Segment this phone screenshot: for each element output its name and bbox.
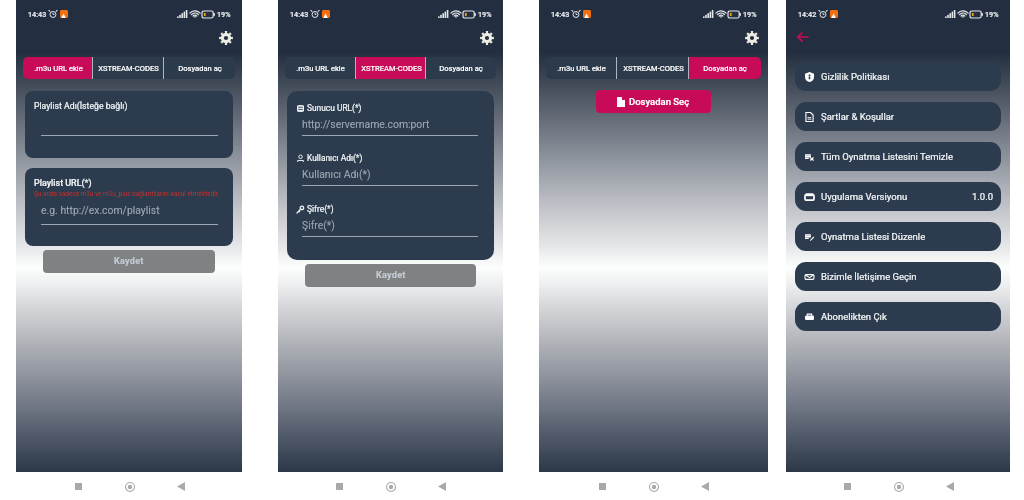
staticText: 19% — [217, 10, 231, 18]
staticText: Tüm Oynatma Listesini Temizle — [821, 151, 953, 162]
button[interactable]: XSTREAM-CODES — [93, 57, 164, 79]
staticText: Dosyadan aç — [178, 64, 222, 73]
button[interactable]: Back — [170, 476, 191, 497]
staticText: Dosyadan aç — [703, 64, 747, 73]
button[interactable]: Dosyadan aç — [164, 57, 235, 79]
staticText: 19% — [478, 10, 492, 18]
staticText: Playlist URL(*) — [34, 178, 92, 188]
staticText: 19% — [743, 10, 757, 18]
button[interactable]: Uygulama Versiyonu — [795, 182, 1001, 211]
staticText: Abonelikten Çık — [821, 311, 887, 322]
staticText: Uygulama Versiyonu — [821, 191, 908, 202]
button[interactable]: Dosyadan Seç — [596, 90, 711, 113]
button[interactable]: Recent apps — [68, 476, 89, 497]
staticText: XSTREAM-CODES — [98, 64, 159, 73]
staticText: Sunucu URL(*) — [307, 103, 362, 113]
button[interactable]: Dosyadan aç — [426, 57, 496, 79]
staticText: http://servername.com:port — [302, 118, 430, 130]
button[interactable]: Back — [431, 476, 452, 497]
button[interactable]: Tüm Oynatma Listesini Temizle — [795, 142, 1001, 171]
staticText: .m3u URL ekle — [296, 64, 345, 73]
button[interactable]: Recent apps — [329, 476, 350, 497]
button[interactable]: Playlist URL(*) — [25, 168, 233, 246]
staticText: Şifre(*) — [307, 204, 334, 214]
staticText: Dosyadan aç — [439, 64, 483, 73]
button[interactable]: Recent apps — [592, 476, 613, 497]
button[interactable]: Recent apps — [837, 476, 858, 497]
button[interactable]: Back — [792, 27, 812, 47]
button[interactable]: .m3u URL ekle — [23, 57, 93, 79]
button[interactable]: Settings — [477, 28, 497, 48]
button[interactable]: Sunucu URL(*) — [287, 91, 494, 260]
button[interactable]: Home — [119, 476, 140, 497]
staticText: 14:43 — [28, 10, 47, 18]
staticText: Kaydet — [376, 270, 406, 281]
button[interactable]: Kaydet — [305, 264, 476, 287]
staticText: Dosyadan Seç — [629, 96, 690, 107]
button[interactable]: Settings — [216, 28, 236, 48]
staticText: Kaydet — [114, 256, 144, 267]
button[interactable]: .m3u URL ekle — [546, 57, 617, 79]
button[interactable]: Back — [939, 476, 960, 497]
button[interactable]: Kaydet — [43, 250, 215, 273]
staticText: XSTREAM-CODES — [361, 64, 422, 73]
button[interactable]: .m3u URL ekle — [285, 57, 356, 79]
staticText: .m3u URL ekle — [557, 64, 606, 73]
staticText: Şartlar & Koşullar — [821, 111, 895, 122]
staticText: Oynatma Listesi Düzenle — [821, 231, 926, 242]
button[interactable]: Home — [643, 476, 664, 497]
button[interactable]: XSTREAM-CODES — [617, 57, 689, 79]
button[interactable]: Playlist Adı(İsteğe bağlı) — [25, 91, 233, 158]
button[interactable]: Dosyadan aç — [689, 57, 761, 79]
button[interactable]: Abonelikten Çık — [795, 302, 1001, 331]
button[interactable]: Home — [380, 476, 401, 497]
staticText: Kullanıcı Adı(*) — [307, 153, 363, 163]
button[interactable]: XSTREAM-CODES — [356, 57, 426, 79]
staticText: Şu anda sadece m3u ve m3u_plus bağlantıl… — [34, 190, 220, 198]
staticText: XSTREAM-CODES — [623, 64, 684, 73]
button[interactable]: Şartlar & Koşullar — [795, 102, 1001, 131]
button[interactable]: Gizlilik Politikası — [795, 62, 1001, 91]
staticText: 1.0.0 — [972, 191, 994, 202]
staticText: e.g. http://ex.com/playlist — [41, 204, 160, 216]
button[interactable]: Settings — [742, 28, 762, 48]
staticText: 19% — [985, 10, 999, 18]
staticText: 14:42 — [798, 10, 817, 18]
button[interactable]: Home — [888, 476, 909, 497]
staticText: Playlist Adı(İsteğe bağlı) — [34, 101, 128, 111]
staticText: 14:43 — [290, 10, 309, 18]
staticText: Şifre(*) — [302, 219, 335, 231]
staticText: .m3u URL ekle — [34, 64, 83, 73]
button[interactable]: Back — [694, 476, 715, 497]
staticText: 14:43 — [551, 10, 570, 18]
staticText: Gizlilik Politikası — [821, 71, 890, 82]
staticText: Bizimle İletişime Geçin — [821, 271, 917, 282]
button[interactable]: Oynatma Listesi Düzenle — [795, 222, 1001, 251]
button[interactable]: Bizimle İletişime Geçin — [795, 262, 1001, 291]
staticText: Kullanıcı Adı(*) — [302, 168, 371, 180]
